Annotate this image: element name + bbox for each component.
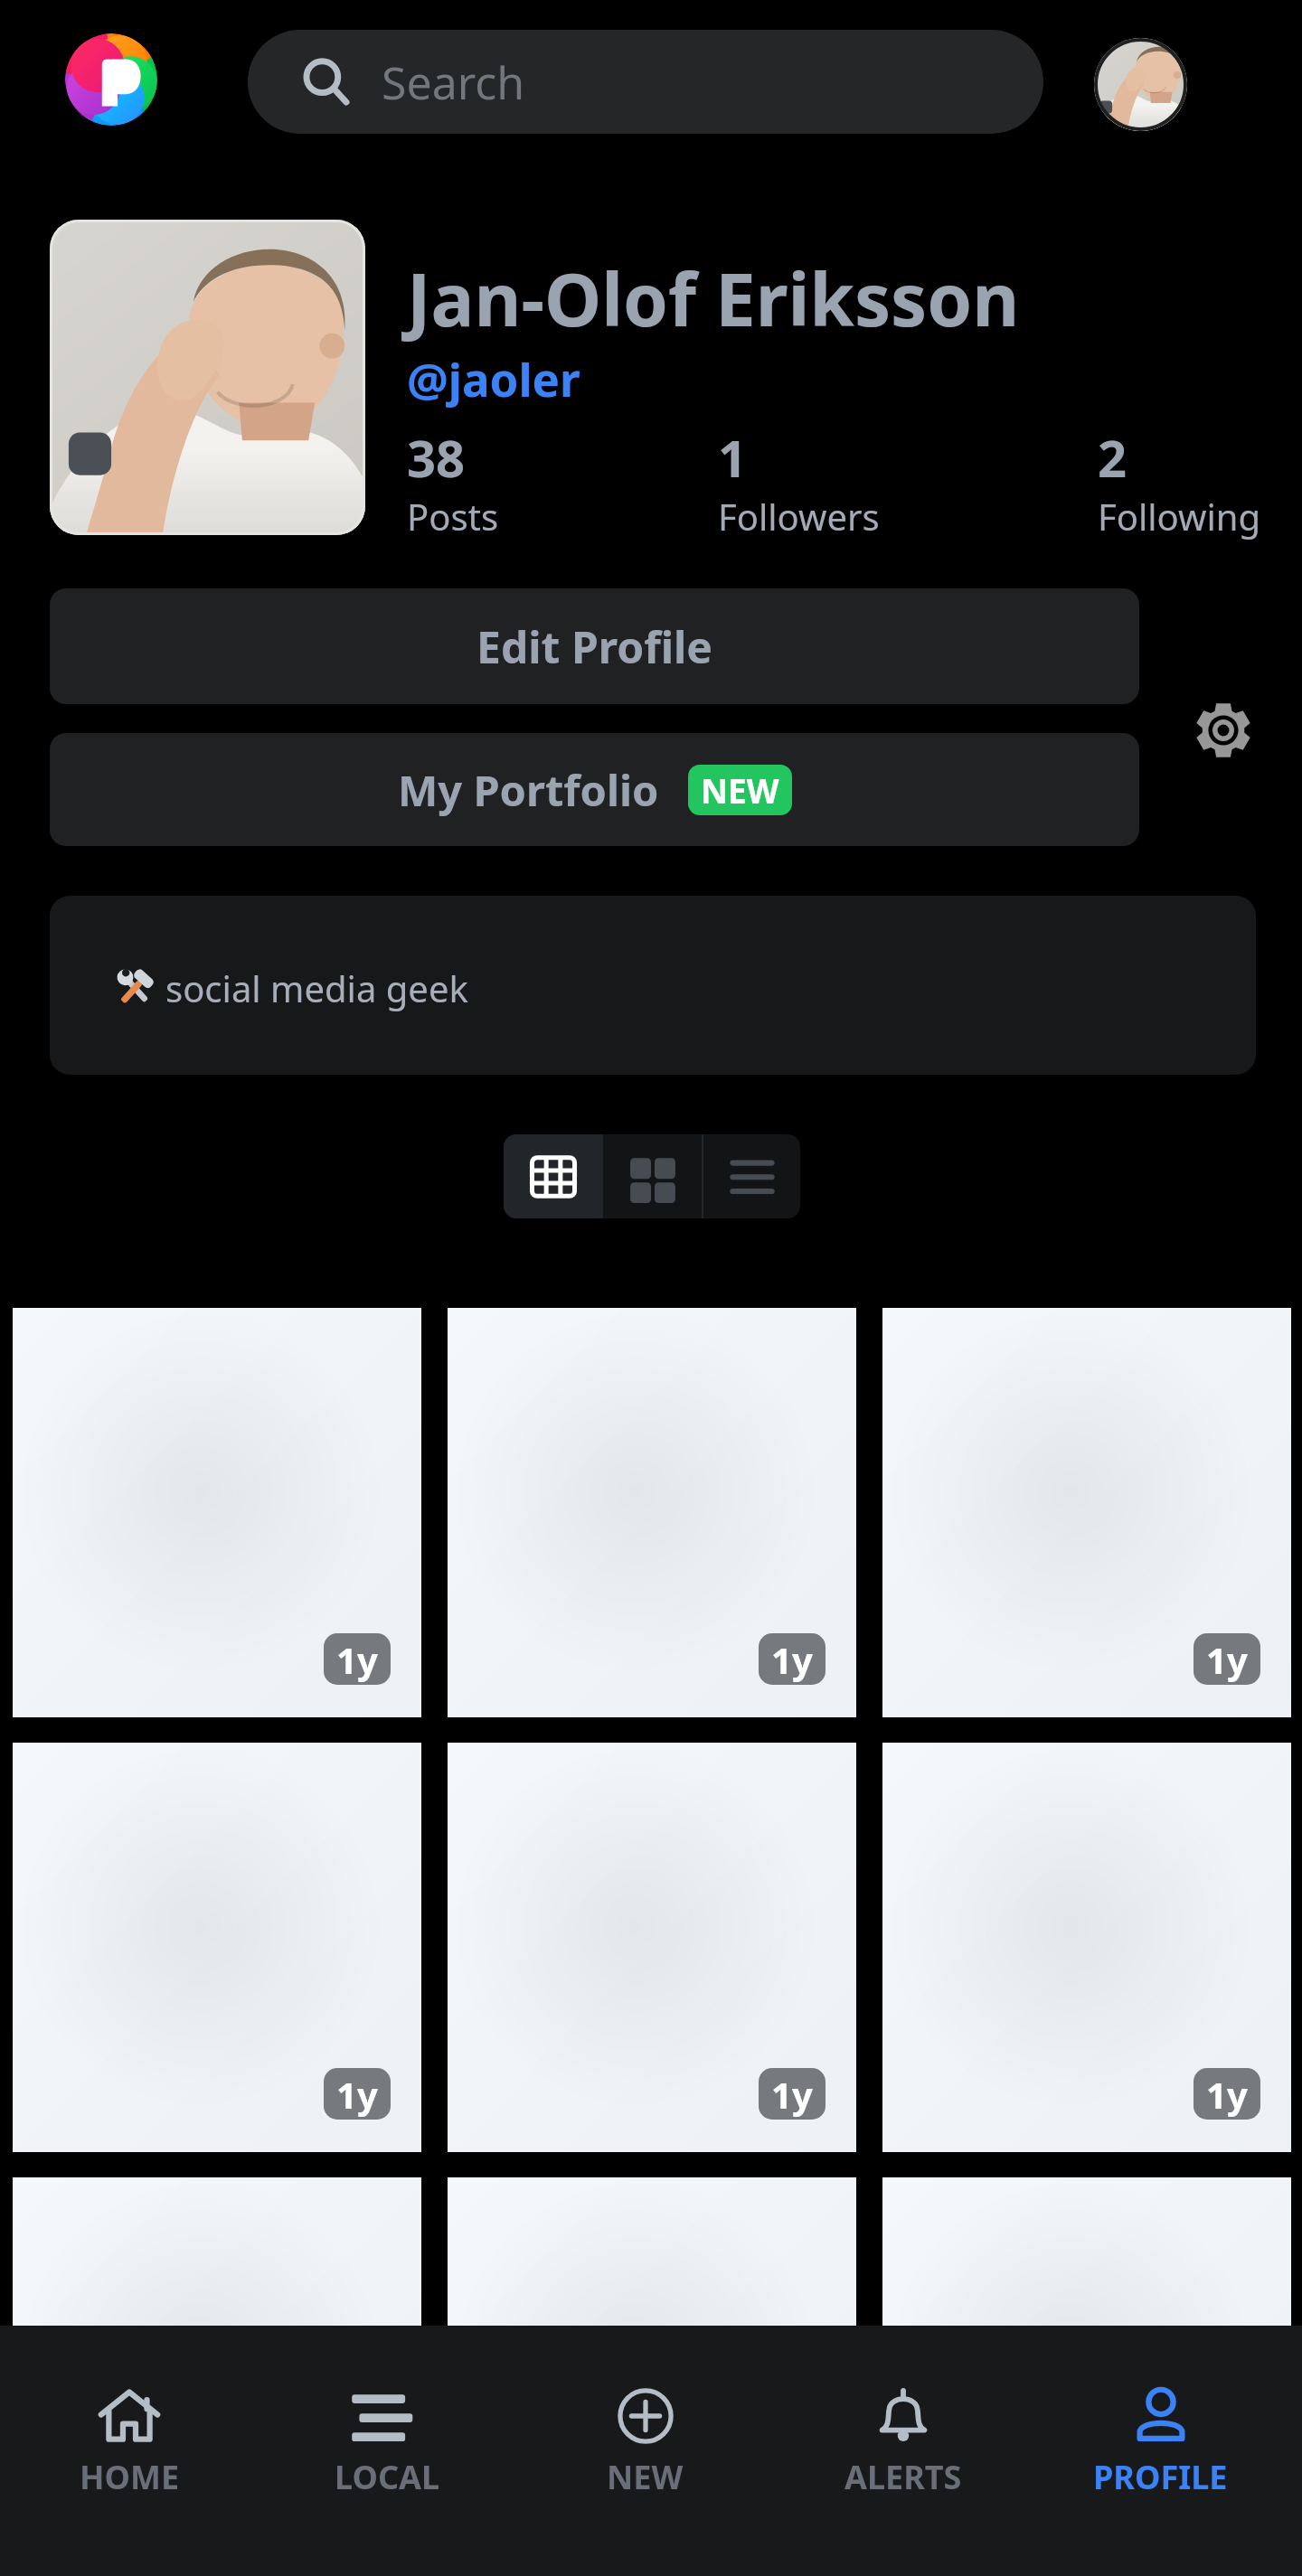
button[interactable]: Post, 1 year ago	[448, 1308, 856, 1717]
button[interactable]: My Portfolio	[50, 733, 1139, 846]
staticText: @jaoler	[407, 347, 580, 409]
staticText: NEW	[607, 2455, 684, 2499]
button[interactable]: Post, 1 year ago	[448, 1743, 856, 2152]
staticText: Edit Profile	[476, 617, 713, 676]
staticText: Posts	[407, 492, 499, 541]
button[interactable]: Grid view	[504, 1134, 603, 1218]
staticText: Jan-Olof Eriksson	[407, 249, 1020, 347]
staticText: 1y	[771, 1635, 813, 1684]
button[interactable]: 1	[718, 423, 880, 541]
button[interactable]: Pixelfed home	[65, 33, 157, 126]
staticText: 1y	[336, 1635, 378, 1684]
staticText: Search	[382, 52, 525, 113]
button[interactable]: Search	[248, 30, 1043, 134]
button[interactable]: PROFILE	[1032, 2326, 1289, 2576]
button[interactable]: Post, 1 year ago	[13, 2177, 421, 2576]
button[interactable]: 38	[407, 423, 499, 541]
button[interactable]: Settings	[1194, 701, 1252, 759]
button[interactable]: 2	[1098, 423, 1261, 541]
staticText: 1y	[1206, 1635, 1248, 1684]
button[interactable]: Large grid view	[603, 1134, 702, 1218]
button[interactable]: Post, 1 year ago	[13, 1308, 421, 1717]
button[interactable]: social media geek	[50, 896, 1256, 1075]
staticText: social media geek	[165, 964, 468, 1012]
button[interactable]: Account	[1094, 38, 1187, 131]
button[interactable]: ALERTS	[774, 2326, 1032, 2576]
button[interactable]: HOME	[0, 2326, 259, 2576]
button[interactable]: Post, 1 year ago	[448, 2177, 856, 2576]
staticText: 38	[407, 423, 466, 492]
button[interactable]: NEW	[516, 2326, 774, 2576]
staticText: 1y	[336, 2070, 378, 2119]
staticText: 2	[1098, 423, 1127, 492]
staticText: 1y	[1206, 2070, 1248, 2119]
staticText: 1y	[771, 2070, 813, 2119]
button[interactable]: Post, 1 year ago	[882, 1743, 1291, 2152]
staticText: PROFILE	[1093, 2455, 1228, 2499]
staticText: LOCAL	[335, 2455, 440, 2499]
button[interactable]: LOCAL	[259, 2326, 516, 2576]
button[interactable]: List view	[703, 1134, 800, 1218]
staticText: Following	[1098, 492, 1261, 541]
staticText: My Portfolio	[398, 761, 659, 819]
staticText: ALERTS	[844, 2455, 962, 2499]
button[interactable]: Post, 1 year ago	[882, 2177, 1291, 2576]
button[interactable]: Profile picture	[50, 220, 365, 535]
button[interactable]: Edit Profile	[50, 588, 1139, 704]
button[interactable]: Post, 1 year ago	[882, 1308, 1291, 1717]
staticText: Followers	[718, 492, 880, 541]
button[interactable]: Post, 1 year ago	[13, 1743, 421, 2152]
staticText: 1	[718, 423, 748, 492]
staticText: HOME	[80, 2455, 180, 2499]
staticText: NEW	[701, 767, 779, 813]
